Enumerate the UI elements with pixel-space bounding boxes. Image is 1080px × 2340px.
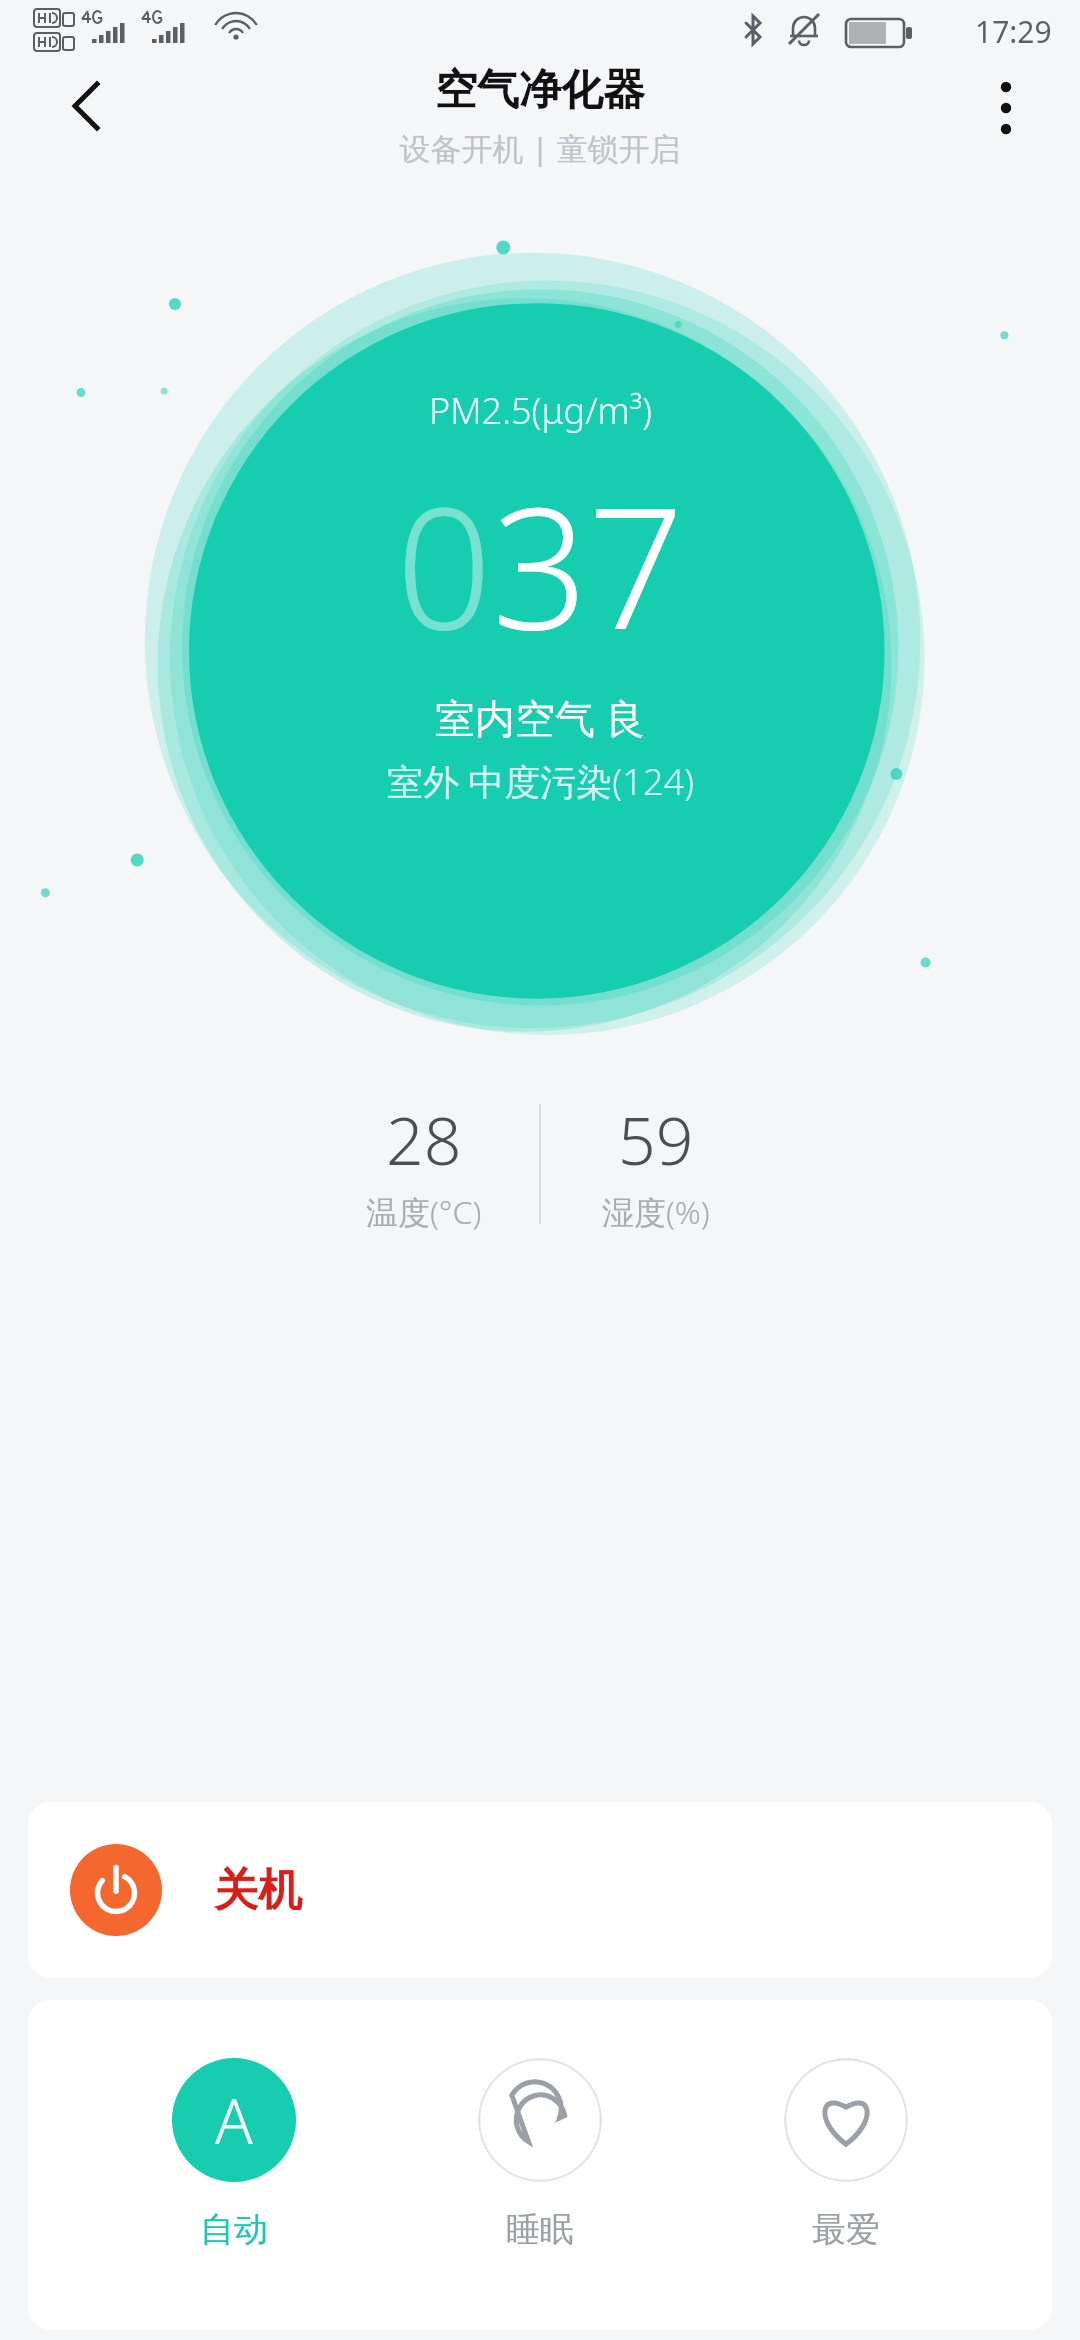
staticText: A (215, 2078, 253, 2162)
staticText: 59 (618, 1094, 694, 1184)
staticText: PM2.5(μg/m³) (429, 386, 652, 435)
staticText: 湿度(%) (602, 1190, 710, 1234)
button[interactable]: More options (970, 72, 1042, 144)
staticText: 室内空气 良 (435, 690, 646, 745)
button[interactable]: A (134, 2058, 334, 2251)
staticText: 0 (396, 449, 492, 678)
staticText: 17:29 (975, 11, 1052, 52)
staticText: 室外 中度污染(124) (387, 757, 694, 806)
staticText: 关机 (214, 1863, 302, 1918)
staticText: 睡眠 (506, 2208, 574, 2251)
staticText: 自动 (200, 2208, 268, 2251)
staticText: 28 (386, 1094, 462, 1184)
staticText: 温度(°C) (366, 1190, 482, 1234)
button[interactable]: Back (48, 68, 124, 144)
staticText: 37 (492, 449, 684, 678)
staticText: 最爱 (812, 2208, 880, 2251)
staticText: 设备开机 | 童锁开启 (399, 127, 681, 169)
button[interactable]: 睡眠 (440, 2058, 640, 2251)
staticText: 空气净化器 (435, 64, 645, 117)
button[interactable]: 关机 (28, 1802, 1052, 1978)
button[interactable]: 最爱 (746, 2058, 946, 2251)
